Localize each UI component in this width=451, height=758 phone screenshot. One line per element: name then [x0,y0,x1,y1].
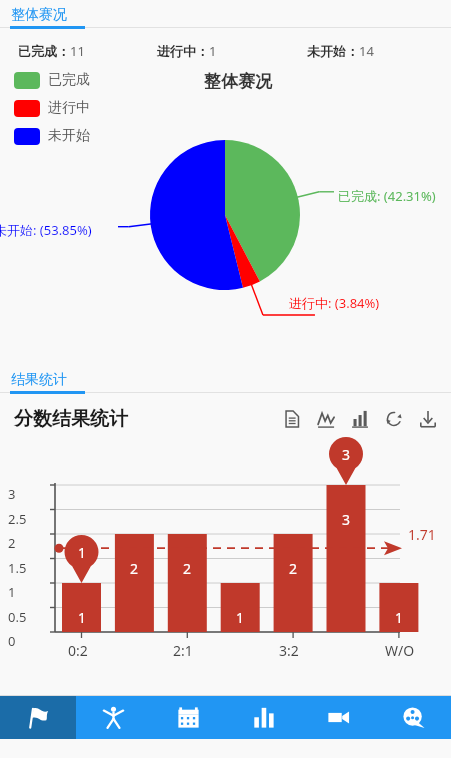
staticText: 整体赛况 [204,71,272,92]
button[interactable]: 整体赛况 [0,0,79,27]
button[interactable]: Schedule [151,696,226,739]
button[interactable]: Video [301,696,376,739]
staticText: 未开始 [48,127,90,145]
button[interactable]: Download [417,408,439,430]
staticText: 进行中 [48,99,90,117]
staticText: 1 [236,608,245,627]
staticText: 0 [8,632,16,650]
staticText: 1 [395,608,404,627]
staticText: 3 [342,510,351,529]
staticText: 1.71 [408,525,436,544]
button[interactable]: 进行中 [14,99,90,117]
button[interactable]: Media [376,696,451,739]
staticText: 进行中： [157,43,209,59]
staticText: 2.5 [8,510,27,528]
staticText: 2:1 [173,641,193,660]
staticText: 1.5 [8,559,27,577]
button[interactable]: Athletes [76,696,151,739]
button[interactable]: Statistics [226,696,301,739]
staticText: 1 [209,42,217,60]
button[interactable]: Refresh [383,408,405,430]
staticText: 整体赛况 [11,6,67,24]
staticText: W/O [385,641,415,660]
staticText: 已完成: (42.31%) [338,187,436,205]
staticText: 1 [8,583,16,601]
staticText: 0:2 [68,641,88,660]
staticText: 未开始： [307,43,359,59]
button[interactable]: 已完成 [14,71,90,89]
staticText: 0.5 [8,608,27,626]
staticText: 未开始: (53.85%) [0,221,92,239]
staticText: 3 [8,485,16,503]
staticText: 已完成： [18,43,70,59]
staticText: 11 [70,42,85,60]
staticText: 2 [289,559,298,578]
staticText: 14 [359,42,374,60]
staticText: 2 [8,534,16,552]
button[interactable]: Table view [281,408,303,430]
button[interactable]: Flag / matches [0,696,76,739]
button[interactable]: 未开始 [14,127,90,145]
staticText: 2 [183,559,192,578]
button[interactable]: Line chart [315,408,337,430]
staticText: 2 [130,559,139,578]
staticText: 3 [342,445,351,464]
staticText: 1 [78,543,87,562]
staticText: 结果统计 [11,371,67,389]
staticText: 进行中: (3.84%) [289,294,380,312]
button[interactable]: Bar chart [349,408,371,430]
staticText: 1 [78,608,87,627]
button[interactable]: 结果统计 [0,365,79,392]
staticText: 已完成 [48,71,90,89]
staticText: 3:2 [279,641,299,660]
staticText: 分数结果统计 [14,407,128,431]
